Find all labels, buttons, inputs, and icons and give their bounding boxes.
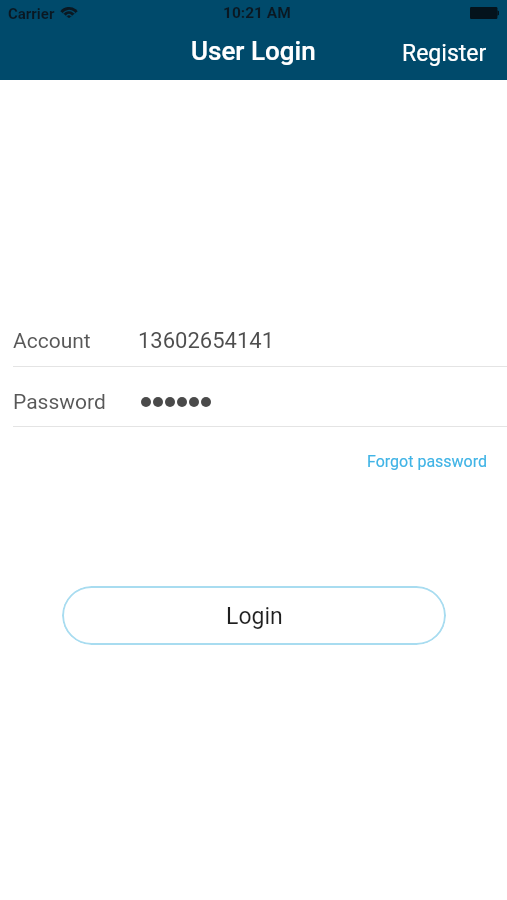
staticText: Login bbox=[226, 603, 283, 630]
button[interactable]: Account bbox=[0, 307, 507, 366]
staticText: 13602654141 bbox=[138, 328, 275, 354]
other: Wi-Fi bbox=[61, 7, 77, 18]
button[interactable]: Forgot password bbox=[344, 442, 507, 481]
button[interactable]: Password bbox=[0, 367, 507, 426]
staticText: Carrier bbox=[8, 5, 55, 23]
staticText: Password bbox=[13, 390, 106, 415]
button[interactable]: Register bbox=[382, 27, 507, 80]
staticText: Forgot password bbox=[367, 452, 488, 471]
button[interactable]: Login bbox=[62, 586, 446, 645]
staticText: 10:21 AM bbox=[223, 4, 291, 22]
staticText: Account bbox=[13, 329, 91, 354]
staticText: User Login bbox=[191, 36, 316, 66]
staticText: Register bbox=[402, 40, 487, 67]
other: Battery bbox=[470, 7, 499, 19]
